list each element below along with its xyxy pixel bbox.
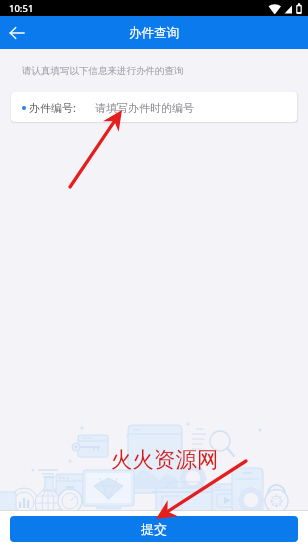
button[interactable]: 办件编号:: [11, 92, 297, 122]
staticText: 提交: [141, 521, 167, 537]
staticText: 请填写办件时的编号: [95, 101, 194, 115]
staticText: 办件查询: [129, 25, 179, 41]
staticText: 火火资源网: [111, 446, 219, 473]
button[interactable]: 提交: [10, 516, 298, 542]
button[interactable]: 返回: [0, 16, 34, 49]
staticText: 10:51: [9, 2, 34, 15]
staticText: 办件编号:: [29, 100, 76, 115]
staticText: 请认真填写以下信息来进行办件的查询: [22, 65, 184, 77]
